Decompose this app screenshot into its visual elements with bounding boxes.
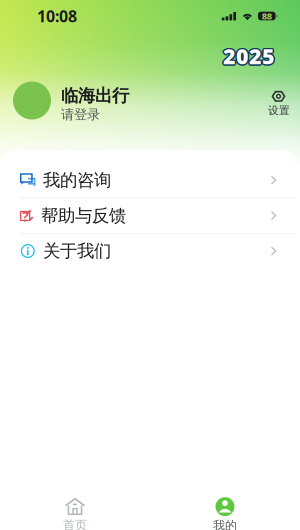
staticText: 首页 — [63, 518, 87, 530]
button[interactable]: 关于我们 — [3, 234, 297, 268]
staticText: 临海出行 — [61, 85, 129, 106]
staticText: 2025 — [222, 41, 274, 69]
staticText: 关于我们 — [43, 240, 111, 262]
staticText: 2025 — [224, 41, 276, 69]
staticText: 88 — [262, 10, 272, 22]
button[interactable]: 我的咨询 — [3, 163, 297, 197]
staticText: 2025 — [224, 43, 276, 71]
staticText: 请登录 — [61, 106, 100, 123]
staticText: 10:08 — [37, 5, 77, 27]
staticText: 我的咨询 — [43, 170, 111, 191]
staticText: 2025 — [223, 43, 275, 71]
staticText: 2025 — [223, 40, 275, 69]
button[interactable]: 我的 — [150, 497, 300, 530]
staticText: 帮助与反馈 — [41, 205, 126, 226]
button[interactable]: ? — [3, 198, 297, 233]
button[interactable]: 首页 — [0, 497, 150, 530]
staticText: 2025 — [222, 42, 274, 70]
staticText: 我的 — [213, 518, 237, 530]
staticText: 2025 — [223, 42, 275, 70]
staticText: 设置 — [268, 104, 290, 117]
staticText: 2025 — [224, 42, 276, 70]
staticText: ? — [22, 208, 28, 225]
staticText: 2025 — [222, 43, 274, 71]
button[interactable]: 设置 — [264, 84, 294, 117]
